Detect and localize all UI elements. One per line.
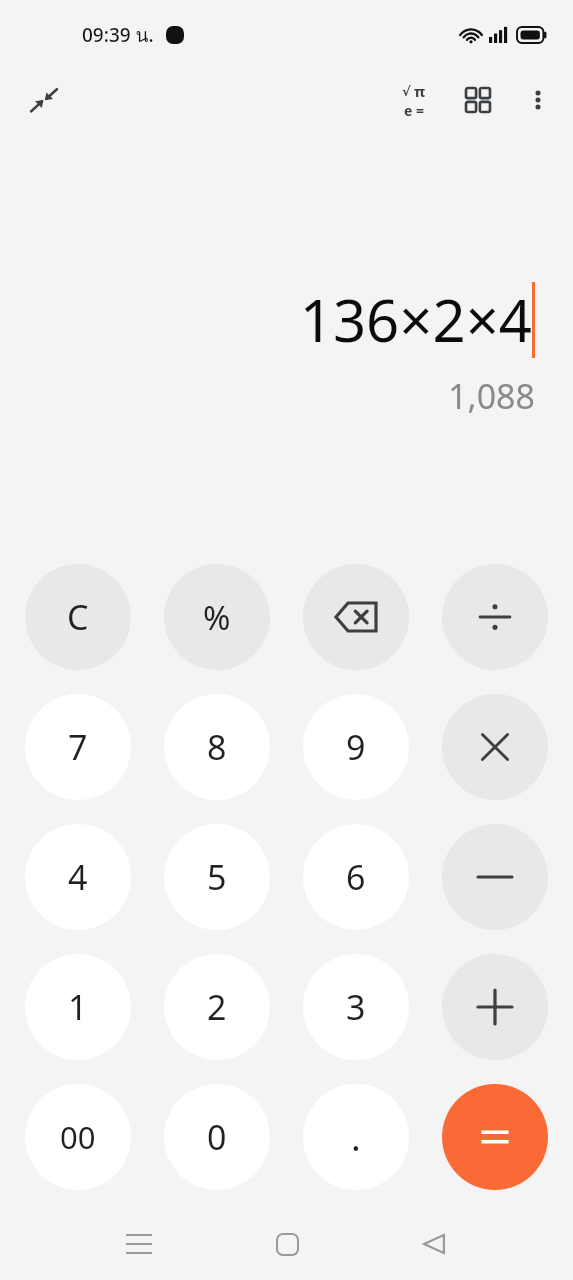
staticText: 2 <box>207 984 227 1030</box>
button[interactable]: Recents <box>110 1215 168 1273</box>
staticText: 0 <box>207 1114 227 1160</box>
button[interactable]: Backspace <box>303 564 409 670</box>
staticText: e <box>404 101 413 120</box>
button[interactable]: 0 <box>164 1084 270 1190</box>
button[interactable]: Collapse <box>16 72 72 128</box>
staticText: % <box>203 595 231 640</box>
button[interactable]: Divide <box>442 564 548 670</box>
button[interactable]: 2 <box>164 954 270 1060</box>
button[interactable]: C <box>25 564 131 670</box>
button[interactable]: Scientific mode <box>387 73 441 127</box>
button[interactable]: Multiply <box>442 694 548 800</box>
button[interactable]: 9 <box>303 694 409 800</box>
button[interactable]: Back <box>405 1215 463 1273</box>
button[interactable]: Converters <box>451 73 505 127</box>
staticText: 1 <box>68 984 88 1030</box>
staticText: √ <box>402 84 411 99</box>
staticText: = <box>416 101 425 120</box>
button[interactable]: Home <box>258 1215 316 1273</box>
button[interactable]: 1 <box>25 954 131 1060</box>
staticText: 3 <box>346 984 366 1030</box>
button[interactable]: . <box>303 1084 409 1190</box>
button[interactable]: 4 <box>25 824 131 930</box>
staticText: . <box>351 1113 361 1162</box>
button[interactable]: 8 <box>164 694 270 800</box>
staticText: π <box>414 81 426 101</box>
staticText: 09:39 น. <box>82 20 154 50</box>
staticText: C <box>67 594 89 640</box>
button[interactable]: 7 <box>25 694 131 800</box>
staticText: 1,088 <box>448 373 535 419</box>
button[interactable]: Percent <box>164 564 270 670</box>
staticText: 7 <box>68 724 88 770</box>
button[interactable]: 6 <box>303 824 409 930</box>
staticText: 00 <box>60 1116 96 1158</box>
button[interactable]: More options <box>511 73 565 127</box>
button[interactable]: 5 <box>164 824 270 930</box>
staticText: 5 <box>207 854 227 900</box>
button[interactable]: Plus <box>442 954 548 1060</box>
staticText: 4 <box>68 854 88 900</box>
button[interactable]: 00 <box>25 1084 131 1190</box>
staticText: 136×2×4 <box>299 280 532 359</box>
staticText: 9 <box>346 724 366 770</box>
staticText: 6 <box>346 854 366 900</box>
button[interactable]: Equals <box>442 1084 548 1190</box>
button[interactable]: Minus <box>442 824 548 930</box>
staticText: 8 <box>207 724 227 770</box>
button[interactable]: 3 <box>303 954 409 1060</box>
